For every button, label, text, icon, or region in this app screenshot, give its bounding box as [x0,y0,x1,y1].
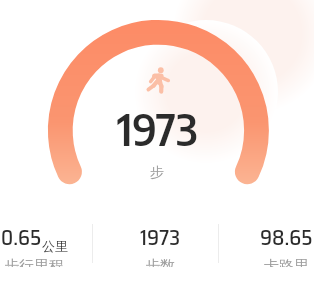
staticText: 步数 [145,257,175,267]
button[interactable]: 98.65 [223,221,314,267]
staticText: 步 [150,164,164,182]
staticText: 1973 [117,102,198,156]
staticText: 98.65 [260,221,313,254]
staticText: 卡路里 [264,257,309,267]
staticText: 0.65 [1,221,42,254]
button[interactable]: 0.65 [0,221,97,267]
staticText: 公里 [42,238,68,254]
staticText: 步行里程 [4,257,64,267]
staticText: 1973 [140,221,181,254]
other: Steps [146,66,171,93]
button[interactable]: 1973 [97,221,223,267]
